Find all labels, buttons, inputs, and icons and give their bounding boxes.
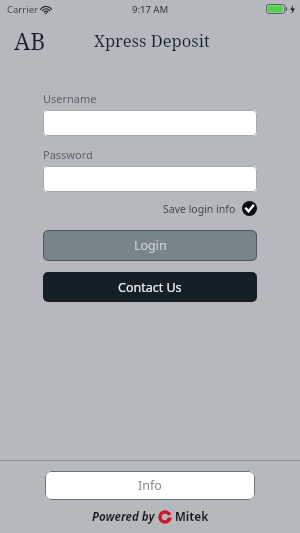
staticText: Password <box>43 147 93 162</box>
other: Save login info checked <box>242 201 257 216</box>
staticText: Powered by <box>92 509 155 525</box>
button[interactable]: Info <box>45 471 255 500</box>
button[interactable]: Login <box>43 230 257 261</box>
staticText: 9:17 AM <box>132 3 169 16</box>
button[interactable]: Contact Us <box>43 272 257 302</box>
button[interactable] <box>43 166 257 192</box>
staticText: Mitek <box>175 509 209 525</box>
staticText: Xpress Deposit <box>94 29 210 51</box>
button[interactable] <box>43 110 257 136</box>
staticText: Contact Us <box>118 279 182 296</box>
button[interactable]: Bank logo <box>10 24 50 56</box>
staticText: AB <box>14 25 46 56</box>
staticText: Info <box>138 477 162 494</box>
staticText: Login <box>134 237 167 254</box>
staticText: Username <box>43 91 97 106</box>
button[interactable]: Save login info <box>163 201 257 216</box>
staticText: Carrier <box>7 3 38 16</box>
staticText: Save login info <box>163 202 236 216</box>
